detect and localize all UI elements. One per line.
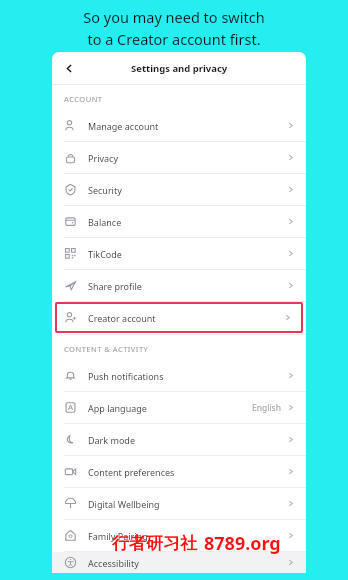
staticText: Share profile: [88, 280, 142, 292]
staticText: 行者研习社: [112, 533, 197, 554]
staticText: 8789.org: [204, 531, 281, 556]
staticText: CONTENT & ACTIVITY: [64, 344, 149, 354]
staticText: Balance: [88, 216, 122, 228]
staticText: Dark mode: [88, 434, 135, 446]
staticText: ACCOUNT: [64, 94, 103, 104]
button[interactable]: Security: [52, 174, 306, 205]
button[interactable]: App language: [52, 392, 306, 423]
staticText: Content preferences: [88, 466, 175, 478]
button[interactable]: TikCode: [52, 238, 306, 269]
staticText: Manage account: [88, 120, 159, 132]
staticText: Push notifications: [88, 370, 164, 382]
staticText: App language: [88, 402, 147, 414]
button[interactable]: Creator account: [55, 302, 303, 333]
button[interactable]: Content preferences: [52, 456, 306, 487]
button[interactable]: Balance: [52, 206, 306, 237]
staticText: Accessibility: [88, 557, 139, 569]
staticText: Family Pairing: [88, 530, 148, 542]
button[interactable]: Dark mode: [52, 424, 306, 455]
staticText: Privacy: [88, 152, 119, 164]
staticText: So you may need to switch: [83, 7, 265, 27]
button[interactable]: Manage account: [52, 110, 306, 141]
staticText: Security: [88, 184, 122, 196]
staticText: Settings and privacy: [131, 62, 228, 75]
staticText: English: [252, 402, 281, 414]
button[interactable]: Privacy: [52, 142, 306, 173]
button[interactable]: Accessibility: [52, 552, 306, 573]
staticText: TikCode: [88, 248, 122, 260]
button[interactable]: Push notifications: [52, 360, 306, 391]
staticText: Digital Wellbeing: [88, 498, 160, 510]
button[interactable]: Back: [60, 59, 78, 77]
staticText: Creator account: [88, 312, 156, 324]
button[interactable]: Digital Wellbeing: [52, 488, 306, 519]
staticText: to a Creator account first.: [87, 29, 261, 49]
button[interactable]: Share profile: [52, 270, 306, 301]
button[interactable]: Family Pairing: [52, 520, 306, 551]
